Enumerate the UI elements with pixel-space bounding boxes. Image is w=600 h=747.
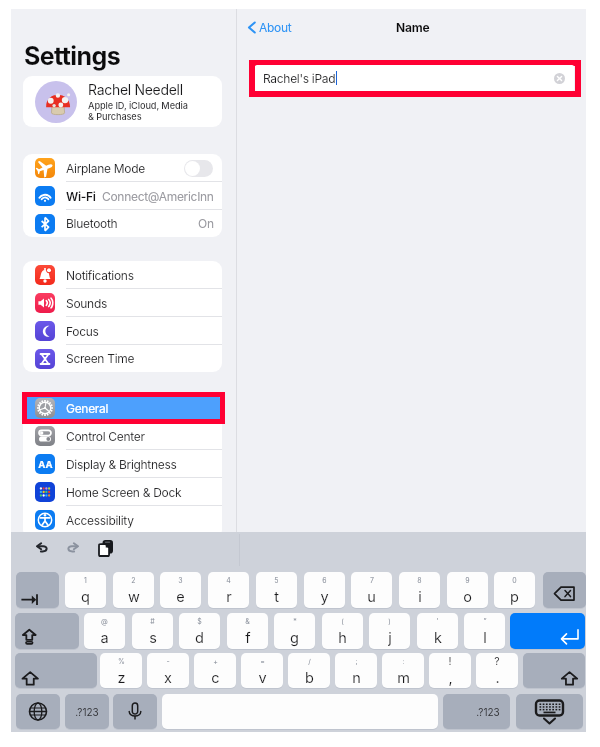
button[interactable]: Hide keyboard	[516, 694, 583, 729]
staticText: j	[388, 629, 392, 647]
staticText: ,	[448, 669, 453, 687]
button[interactable]: *	[274, 613, 315, 649]
button[interactable]: Change keyboard	[16, 694, 60, 729]
staticText: Airplane Mode	[66, 161, 145, 176]
button[interactable]: Tab	[16, 572, 59, 608]
button[interactable]: 7	[351, 572, 392, 608]
staticText: @	[101, 617, 108, 625]
button[interactable]: 3	[160, 572, 201, 608]
staticText: 8	[417, 576, 422, 584]
button[interactable]: Control Center	[23, 422, 222, 450]
button[interactable]: ?	[476, 653, 518, 688]
button[interactable]: $	[179, 613, 220, 649]
button[interactable]: Screen Time	[23, 345, 222, 372]
staticText: Rachel Needell	[88, 81, 183, 98]
button[interactable]: Undo	[30, 535, 54, 559]
button[interactable]: 4	[208, 572, 249, 608]
button[interactable]: /	[288, 653, 330, 688]
button[interactable]: +	[194, 653, 236, 688]
staticText: Settings	[24, 41, 121, 71]
staticText: h	[338, 629, 347, 647]
staticText: (	[341, 617, 344, 625]
button[interactable]: Bluetooth	[23, 210, 222, 237]
button[interactable]: -	[147, 653, 189, 688]
button[interactable]: Shift	[15, 613, 79, 649]
button[interactable]: Rachel Needell	[23, 76, 222, 127]
button[interactable]: 1	[65, 572, 106, 608]
staticText: n	[352, 669, 361, 687]
button[interactable]: Notifications	[23, 261, 222, 289]
button[interactable]: .?123	[65, 694, 109, 729]
staticText: t	[274, 588, 279, 606]
staticText: 1	[84, 576, 87, 584]
button[interactable]: About	[236, 16, 298, 39]
button[interactable]: Return	[510, 613, 585, 649]
button[interactable]: Accessibility	[23, 506, 222, 534]
staticText: v	[258, 669, 267, 687]
staticText: .?123	[75, 706, 99, 718]
button[interactable]: ”	[464, 613, 505, 649]
button[interactable]: (	[322, 613, 363, 649]
staticText: c	[211, 669, 220, 687]
staticText: Accessibility	[66, 513, 134, 528]
staticText: %	[118, 657, 125, 665]
button[interactable]: Sounds	[23, 289, 222, 317]
staticText: x	[164, 669, 172, 687]
button[interactable]: Shift	[523, 653, 585, 688]
staticText: u	[367, 588, 376, 606]
staticText: +	[213, 657, 218, 665]
staticText: s	[149, 629, 157, 647]
button[interactable]: Paste	[94, 535, 118, 559]
button[interactable]: .?123	[443, 694, 510, 729]
staticText: w	[128, 588, 140, 606]
button[interactable]: 6	[304, 572, 345, 608]
button[interactable]: Shift	[15, 653, 97, 688]
staticText: ”	[483, 617, 487, 625]
button[interactable]: Redo	[61, 535, 85, 559]
staticText: )	[388, 617, 391, 625]
staticText: Home Screen & Dock	[66, 485, 182, 500]
button[interactable]: Home Screen & Dock	[23, 478, 222, 506]
staticText: f	[245, 629, 251, 647]
staticText: =	[260, 657, 265, 665]
button[interactable]: 8	[399, 572, 440, 608]
button[interactable]: Rachel's iPad	[255, 65, 574, 91]
button[interactable]: !	[429, 653, 471, 688]
staticText: z	[117, 669, 126, 687]
staticText: p	[510, 588, 519, 606]
staticText: d	[195, 629, 204, 647]
staticText: o	[463, 588, 472, 606]
button[interactable]: 2	[113, 572, 154, 608]
button[interactable]: AA	[23, 450, 222, 478]
staticText: 3	[178, 576, 183, 584]
button[interactable]: 9	[447, 572, 488, 608]
staticText: 6	[322, 576, 327, 584]
staticText: Sounds	[66, 296, 107, 311]
button[interactable]: :	[382, 653, 424, 688]
button[interactable]: =	[241, 653, 283, 688]
button[interactable]: Airplane mode toggle	[184, 160, 213, 177]
button[interactable]: &	[227, 613, 268, 649]
button[interactable]: 5	[256, 572, 297, 608]
button[interactable]: %	[100, 653, 142, 688]
button[interactable]: @	[84, 613, 125, 649]
staticText: Name	[396, 20, 430, 35]
button[interactable]: Dictation	[113, 694, 157, 729]
button[interactable]: ;	[335, 653, 377, 688]
button[interactable]: Focus	[23, 317, 222, 345]
button[interactable]: )	[369, 613, 410, 649]
button[interactable]: Wi-Fi	[23, 182, 222, 210]
button[interactable]: General	[23, 394, 222, 422]
button[interactable]: Backspace	[543, 572, 586, 608]
button[interactable]: #	[132, 613, 173, 649]
staticText: Rachel's iPad	[263, 71, 336, 86]
button[interactable]: Clear text	[554, 73, 565, 84]
staticText: l	[483, 629, 487, 647]
staticText: Wi-Fi	[66, 189, 96, 204]
staticText: Control Center	[66, 429, 145, 444]
button[interactable]: 0	[494, 572, 535, 608]
button[interactable]: '	[417, 613, 458, 649]
staticText: General	[66, 401, 109, 416]
button[interactable]: Airplane Mode	[23, 154, 222, 182]
